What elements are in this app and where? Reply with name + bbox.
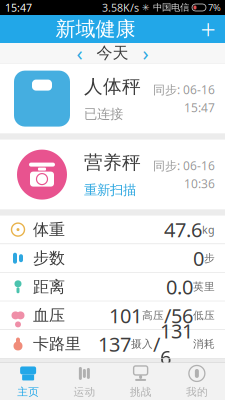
- staticText: 06-16: [183, 158, 215, 174]
- staticText: 已连接: [84, 106, 123, 122]
- staticText: 重新扫描: [84, 182, 136, 198]
- staticText: 56: [171, 302, 193, 329]
- button[interactable]: Add device: [191, 15, 225, 43]
- button[interactable]: 距离: [0, 273, 225, 301]
- button[interactable]: 我的: [169, 359, 225, 400]
- staticText: 主页: [17, 385, 39, 398]
- staticText: 低压: [193, 309, 215, 322]
- staticText: 新域健康: [55, 17, 135, 41]
- button[interactable]: 步数: [0, 244, 225, 273]
- staticText: 0.0: [166, 273, 193, 300]
- staticText: 06-16: [183, 82, 215, 98]
- button[interactable]: 血压: [0, 301, 225, 330]
- button[interactable]: 人体秤: [0, 64, 225, 134]
- staticText: 中国电信: [153, 2, 189, 13]
- staticText: 同步:: [153, 158, 180, 174]
- staticText: 步数: [33, 248, 65, 268]
- staticText: 10:36: [184, 176, 215, 191]
- button[interactable]: 卡路里: [0, 330, 225, 359]
- staticText: 15:47: [5, 0, 32, 15]
- button[interactable]: 挑战: [112, 359, 169, 400]
- staticText: 137: [98, 331, 131, 357]
- staticText: 摄入: [131, 337, 153, 350]
- staticText: 1316: [160, 317, 193, 370]
- staticText: 距离: [33, 277, 65, 297]
- staticText: kg: [202, 222, 215, 237]
- button[interactable]: 主页: [0, 359, 56, 400]
- staticText: 人体秤: [84, 75, 141, 98]
- staticText: 15:47: [184, 100, 215, 115]
- staticText: 101: [109, 302, 142, 329]
- staticText: 血压: [33, 306, 65, 325]
- staticText: /: [164, 302, 171, 329]
- staticText: 体重: [33, 220, 65, 239]
- staticText: 同步:: [153, 82, 180, 98]
- button[interactable]: 体重: [0, 216, 225, 244]
- staticText: 运动: [73, 385, 95, 398]
- staticText: 消耗: [193, 337, 215, 350]
- staticText: 7%: [208, 1, 221, 14]
- button[interactable]: 营养秤: [0, 140, 225, 210]
- staticText: /: [153, 331, 160, 357]
- button[interactable]: Previous day: [66, 43, 92, 63]
- button[interactable]: 运动: [56, 359, 112, 400]
- staticText: 0: [193, 245, 204, 271]
- staticText: 挑战: [130, 385, 152, 398]
- staticText: 我的: [186, 385, 208, 398]
- staticText: 47.6: [164, 216, 202, 243]
- staticText: 英里: [193, 280, 215, 293]
- staticText: ✳: [139, 2, 153, 13]
- staticText: 步: [204, 252, 215, 265]
- staticText: ‹: [76, 40, 82, 66]
- staticText: 今天: [96, 43, 128, 63]
- staticText: +: [200, 11, 215, 47]
- staticText: 高压: [142, 309, 164, 322]
- staticText: 卡路里: [33, 334, 81, 354]
- staticText: ›: [142, 40, 148, 66]
- staticText: 营养秤: [84, 151, 141, 174]
- staticText: 3.58K/s: [102, 0, 139, 15]
- button[interactable]: Next day: [132, 43, 158, 63]
